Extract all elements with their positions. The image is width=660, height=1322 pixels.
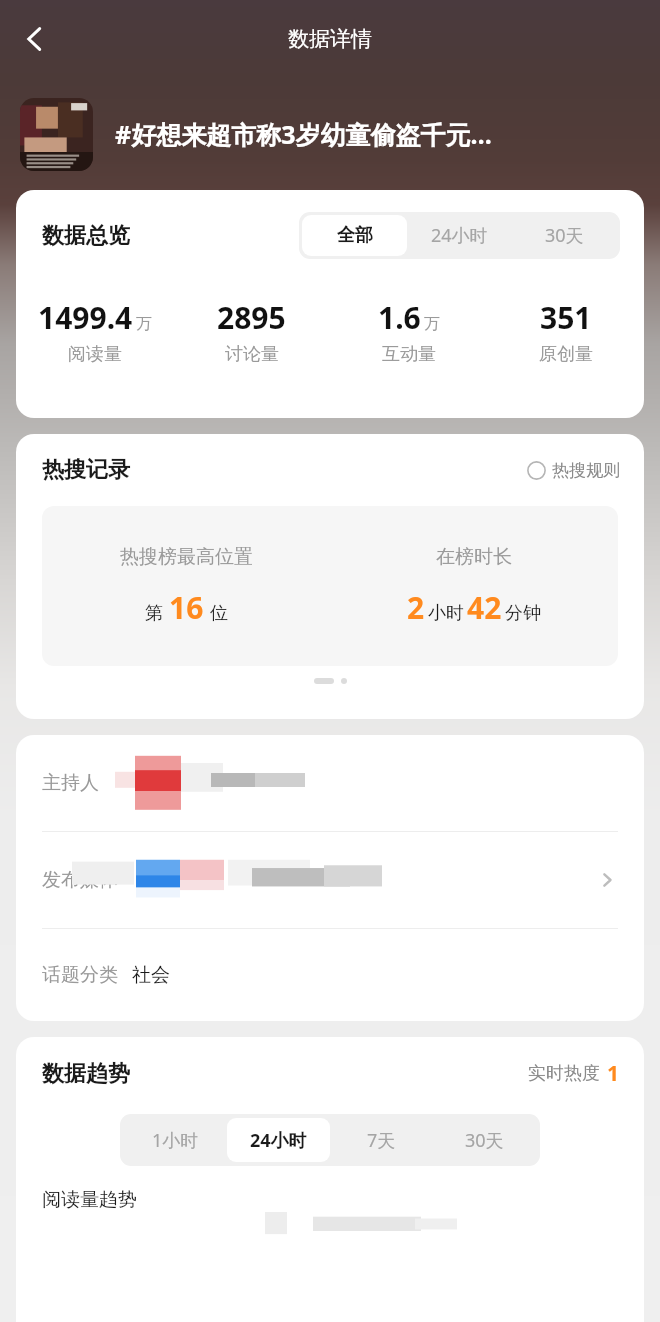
staticText: 全部 [337,224,373,247]
staticText: 30天 [465,1128,504,1153]
staticText: 1.6 [378,297,421,338]
staticText: 互动量 [382,343,436,366]
staticText: 2 [407,587,425,628]
staticText: 数据趋势 [42,1060,130,1088]
staticText: 1499.4 [38,297,133,338]
staticText: 社会 [132,963,170,987]
button[interactable]: 24小时 [407,215,512,256]
staticText: 位 [210,602,228,625]
staticText: 30天 [545,223,584,248]
staticText: 数据总览 [42,222,130,250]
staticText: 讨论量 [225,343,279,366]
staticText: 1 [607,1059,620,1088]
staticText: 2895 [217,297,286,338]
button[interactable]: 1小时 [124,1118,227,1162]
staticText: 1小时 [152,1128,199,1153]
staticText: 阅读量 [68,343,122,366]
button[interactable]: 24小时 [227,1118,330,1162]
staticText: 在榜时长 [436,545,512,569]
staticText: 热搜规则 [552,460,620,481]
staticText: 第 [145,602,163,625]
button[interactable]: 发布媒体 [42,832,618,928]
staticText: 分钟 [505,602,541,625]
button[interactable]: 30天 [433,1118,536,1162]
staticText: #好想来超市称3岁幼童偷盗千元… [115,117,648,151]
staticText: 主持人 [42,771,99,795]
button[interactable]: 全部 [302,215,407,256]
button[interactable]: 主持人 [42,735,618,831]
staticText: 24小时 [250,1128,307,1153]
staticText: 351 [540,297,592,338]
staticText: 小时 [428,602,464,625]
staticText: 话题分类 [42,963,118,987]
staticText: 发布媒体 [42,868,118,892]
button[interactable]: #好想来超市称3岁幼童偷盗千元… [0,78,660,190]
staticText: 万 [424,314,440,334]
button[interactable]: 返回 [8,12,62,66]
button[interactable]: 热搜规则 [527,460,620,481]
staticText: 热搜记录 [42,456,130,484]
staticText: 16 [169,587,204,628]
staticText: 24小时 [431,223,488,248]
staticText: 热搜榜最高位置 [120,545,253,569]
staticText: 数据详情 [288,26,372,52]
staticText: 实时热度 [528,1062,600,1085]
staticText: 42 [467,587,502,628]
staticText: 阅读量趋势 [42,1188,137,1212]
button[interactable]: 30天 [512,215,617,256]
staticText: 7天 [367,1128,396,1153]
staticText: 万 [136,314,152,334]
button[interactable]: 7天 [330,1118,433,1162]
button[interactable]: 话题分类 [42,929,618,1021]
staticText: 原创量 [539,343,593,366]
